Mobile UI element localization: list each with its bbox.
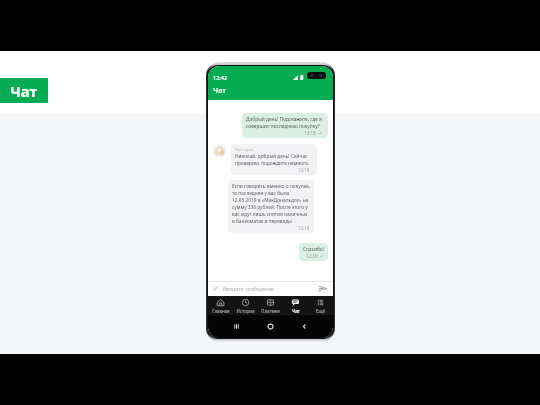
staticText: 12:42: [213, 74, 228, 81]
staticText: 12:16: [298, 167, 310, 173]
staticText: История: [236, 308, 255, 314]
button[interactable]: Виктория: [235, 147, 314, 173]
staticText: 12:15: [304, 130, 316, 136]
button[interactable]: История: [233, 296, 258, 315]
staticText: Чат: [292, 308, 300, 314]
staticText: Чат: [213, 85, 226, 95]
staticText: Чат: [10, 81, 38, 101]
button[interactable]: Добрый день! Подскажите, где я совершил …: [246, 116, 325, 136]
staticText: Добрый день! Подскажите, где я совершил …: [246, 116, 322, 130]
other: Домой: [265, 321, 276, 332]
button[interactable]: Спасибо!: [303, 246, 324, 259]
staticText: Виктория: [235, 147, 255, 153]
button[interactable]: Платежи: [258, 296, 283, 315]
other: Назад: [299, 321, 310, 332]
staticText: Николай, добрый день! Сейчас проверим, п…: [235, 153, 310, 167]
button[interactable]: Ещё: [308, 296, 333, 315]
staticText: 12:19: [306, 253, 318, 259]
staticText: Главная: [212, 308, 230, 314]
staticText: Введите сообщение: [223, 285, 274, 292]
button[interactable]: Чат: [283, 296, 308, 315]
staticText: Ещё: [316, 308, 325, 314]
staticText: 12:16: [298, 225, 310, 231]
staticText: Спасибо!: [303, 246, 324, 253]
other: Отправить: [318, 284, 327, 293]
button[interactable]: Главная: [208, 296, 233, 315]
button[interactable]: Если говорить именно о покупке, то после…: [232, 183, 311, 231]
button[interactable]: Чат: [0, 78, 48, 103]
staticText: Платежи: [261, 308, 280, 314]
other: Недавние: [231, 321, 242, 332]
staticText: Если говорить именно о покупке, то после…: [232, 183, 310, 225]
other: Прикрепить: [213, 286, 219, 292]
